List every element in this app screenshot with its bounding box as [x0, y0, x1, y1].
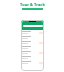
button[interactable]	[22, 60, 43, 65]
button[interactable]	[22, 30, 43, 35]
button[interactable]	[22, 40, 43, 45]
button[interactable]	[22, 45, 43, 50]
staticText: Tour & Track	[20, 2, 45, 7]
button[interactable]	[22, 50, 43, 55]
button[interactable]	[22, 35, 43, 40]
button[interactable]	[22, 55, 43, 60]
